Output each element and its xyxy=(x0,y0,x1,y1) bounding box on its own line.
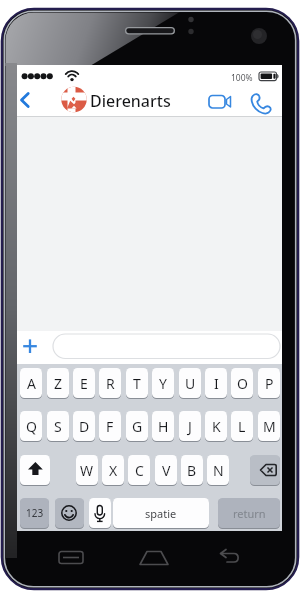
staticText: X xyxy=(109,461,118,480)
staticText: Q xyxy=(26,417,37,436)
staticText: N xyxy=(213,461,224,480)
button[interactable]: Y xyxy=(152,368,174,398)
staticText: M xyxy=(263,417,276,436)
button[interactable]: P xyxy=(258,368,280,398)
staticText: O xyxy=(237,374,248,393)
button[interactable]: O xyxy=(231,368,253,398)
button[interactable]: U xyxy=(179,368,201,398)
staticText: C xyxy=(135,461,144,480)
button[interactable] xyxy=(17,89,37,111)
button[interactable]: K xyxy=(205,411,227,441)
staticText: spatie xyxy=(145,506,177,521)
button[interactable]: D xyxy=(73,411,95,441)
button[interactable]: W xyxy=(76,455,98,485)
button[interactable]: L xyxy=(231,411,253,441)
button[interactable]: Q xyxy=(20,411,42,441)
staticText: 123 xyxy=(26,506,44,520)
button[interactable]: G xyxy=(126,411,148,441)
button[interactable]: B xyxy=(181,455,203,485)
button[interactable]: H xyxy=(152,411,174,441)
staticText: D xyxy=(79,417,90,436)
button[interactable]: R xyxy=(99,368,121,398)
button[interactable]: T xyxy=(126,368,148,398)
button[interactable]: V xyxy=(155,455,177,485)
button[interactable]: M xyxy=(258,411,280,441)
staticText: T xyxy=(133,374,141,393)
staticText: B xyxy=(187,461,197,480)
button[interactable]: return xyxy=(218,498,280,528)
button[interactable]: A xyxy=(20,368,42,398)
staticText: S xyxy=(54,417,62,436)
staticText: A xyxy=(27,374,36,393)
button[interactable]: C xyxy=(128,455,150,485)
staticText: L xyxy=(238,417,246,436)
button[interactable] xyxy=(247,91,275,115)
button[interactable] xyxy=(250,455,280,485)
staticText: Y xyxy=(159,374,167,393)
staticText: J xyxy=(188,417,192,436)
button[interactable]: I xyxy=(205,368,227,398)
staticText: V xyxy=(162,461,171,480)
button[interactable]: S xyxy=(47,411,69,441)
staticText: 100% xyxy=(231,72,253,84)
button[interactable]: F xyxy=(99,411,121,441)
button[interactable] xyxy=(205,91,235,113)
staticText: return xyxy=(233,506,266,521)
button[interactable] xyxy=(89,498,111,528)
button[interactable]: J xyxy=(179,411,201,441)
button[interactable]: Z xyxy=(47,368,69,398)
staticText: H xyxy=(158,417,169,436)
staticText: E xyxy=(80,374,88,393)
button[interactable] xyxy=(55,498,84,528)
button[interactable]: X xyxy=(102,455,124,485)
staticText: F xyxy=(106,417,114,436)
button[interactable] xyxy=(20,455,50,485)
staticText: Dierenarts xyxy=(90,90,171,112)
staticText: P xyxy=(265,374,274,393)
staticText: R xyxy=(106,374,115,393)
staticText: Z xyxy=(54,374,63,393)
button[interactable] xyxy=(53,334,280,359)
button[interactable] xyxy=(21,337,39,355)
staticText: U xyxy=(185,374,196,393)
button[interactable]: 123 xyxy=(20,498,49,528)
staticText: W xyxy=(80,461,94,480)
staticText: G xyxy=(132,417,143,436)
button[interactable]: spatie xyxy=(113,498,209,528)
button[interactable]: N xyxy=(207,455,229,485)
staticText: K xyxy=(212,417,221,436)
staticText: I xyxy=(214,374,219,393)
button[interactable]: E xyxy=(73,368,95,398)
